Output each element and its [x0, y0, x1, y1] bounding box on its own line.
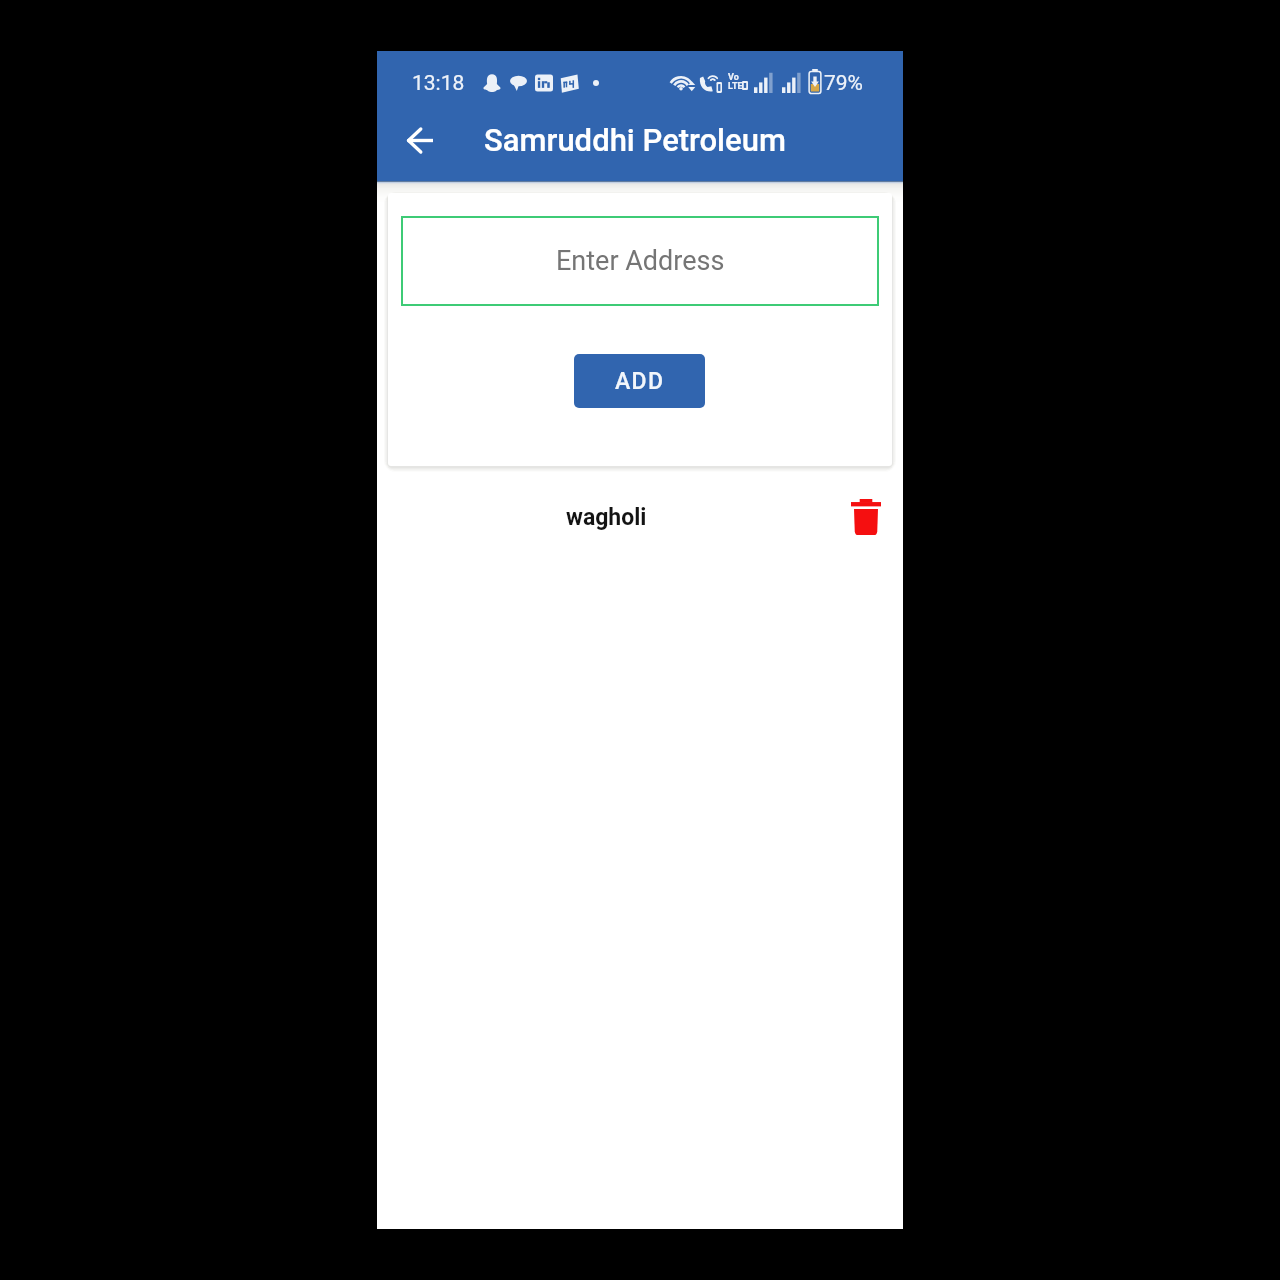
button[interactable]: Enter Address: [401, 216, 879, 306]
staticText: LTE: [728, 81, 743, 92]
staticText: Samruddhi Petroleum: [484, 122, 786, 158]
staticText: ADD: [615, 368, 665, 395]
staticText: 79%: [824, 71, 863, 96]
button[interactable]: ADD: [574, 354, 705, 408]
staticText: 13:18: [412, 71, 465, 96]
button[interactable]: wagholi: [377, 475, 903, 560]
staticText: Enter Address: [556, 245, 725, 277]
staticText: wagholi: [566, 504, 647, 531]
staticText: Vo: [728, 72, 739, 83]
button[interactable]: Delete: [842, 493, 890, 541]
button[interactable]: Back: [396, 116, 444, 164]
